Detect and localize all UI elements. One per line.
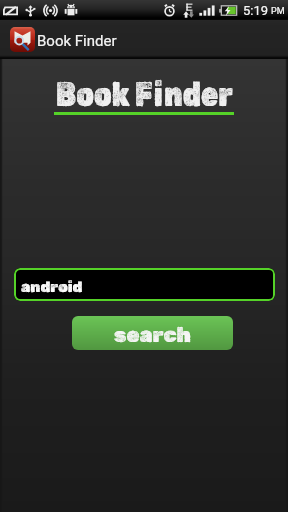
other: Book Finder xyxy=(10,27,35,52)
button[interactable]: search xyxy=(72,316,233,350)
staticText: android xyxy=(21,278,83,296)
staticText: Book Finder xyxy=(37,32,117,50)
staticText: PM xyxy=(271,6,285,17)
staticText: Book Finder xyxy=(56,74,233,114)
staticText: search xyxy=(114,322,191,347)
button[interactable]: android xyxy=(14,268,275,301)
staticText: 5:19 xyxy=(243,3,269,18)
